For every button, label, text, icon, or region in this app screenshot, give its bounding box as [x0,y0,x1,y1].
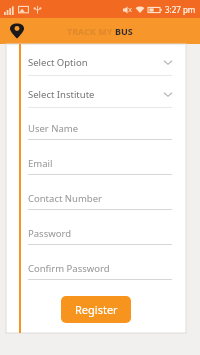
button[interactable]: Select Option [28,56,172,76]
staticText: Select Option [28,56,164,69]
button[interactable]: Contact Number [28,192,172,210]
button[interactable]: Location [9,23,25,39]
staticText: Password [28,227,71,240]
staticText: Select Institute [28,88,164,101]
button[interactable]: Confirm Password [28,262,172,280]
staticText: TRACK MY [67,25,115,37]
button[interactable]: Password [28,227,172,245]
staticText: BUS [115,25,133,37]
button[interactable]: User Name [28,122,172,140]
staticText: Email [28,157,53,170]
staticText: Confirm Password [28,262,110,275]
staticText: Register [75,302,118,317]
staticText: Contact Number [28,192,102,205]
staticText: User Name [28,122,79,135]
button[interactable]: Register [61,296,131,323]
button[interactable]: Select Institute [28,88,172,108]
staticText: 3:27 pm [165,4,196,15]
button[interactable]: Email [28,157,172,175]
